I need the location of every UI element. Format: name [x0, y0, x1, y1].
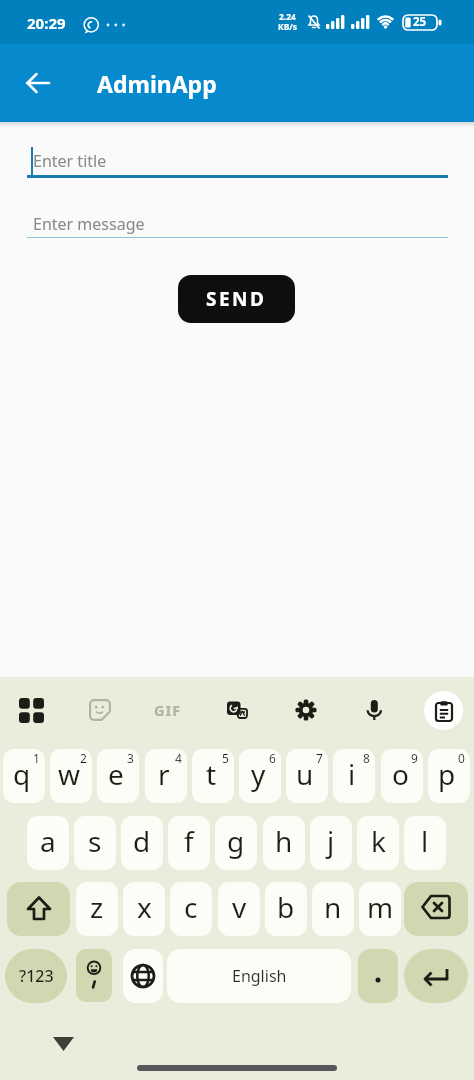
- staticText: t: [206, 755, 217, 793]
- button[interactable]: [358, 949, 398, 1003]
- button[interactable]: s: [74, 816, 116, 870]
- staticText: AdminApp: [97, 68, 217, 99]
- staticText: English: [232, 965, 287, 987]
- button[interactable]: [286, 690, 326, 730]
- button[interactable]: Enter title: [27, 138, 448, 178]
- staticText: a: [40, 822, 56, 860]
- button[interactable]: y: [239, 749, 281, 803]
- button[interactable]: c: [170, 882, 212, 936]
- staticText: 20:29: [27, 13, 66, 33]
- staticText: z: [90, 888, 104, 926]
- staticText: d: [133, 822, 151, 860]
- button[interactable]: x: [123, 882, 165, 936]
- staticText: 6: [269, 750, 276, 766]
- button[interactable]: d: [121, 816, 163, 870]
- button[interactable]: [404, 949, 468, 1003]
- staticText: 1: [33, 750, 40, 766]
- button[interactable]: a: [27, 816, 69, 870]
- button[interactable]: w: [50, 749, 92, 803]
- staticText: e: [108, 755, 124, 793]
- button[interactable]: m: [359, 882, 401, 936]
- button[interactable]: f: [168, 816, 210, 870]
- button[interactable]: v: [218, 882, 260, 936]
- button[interactable]: b: [265, 882, 307, 936]
- staticText: SEND: [206, 286, 267, 312]
- staticText: Enter message: [33, 213, 145, 235]
- button[interactable]: t: [192, 749, 234, 803]
- staticText: g: [227, 822, 245, 860]
- staticText: r: [158, 755, 170, 793]
- staticText: 4: [175, 750, 182, 766]
- staticText: h: [275, 822, 293, 860]
- button[interactable]: Enter message: [27, 205, 448, 239]
- staticText: GIF: [154, 700, 182, 720]
- staticText: b: [277, 888, 295, 926]
- staticText: p: [438, 755, 456, 793]
- button[interactable]: n: [312, 882, 354, 936]
- staticText: u: [296, 755, 314, 793]
- button[interactable]: [217, 690, 257, 730]
- button[interactable]: [404, 882, 468, 936]
- staticText: s: [88, 822, 102, 860]
- button[interactable]: GIF: [148, 690, 188, 730]
- staticText: 0: [458, 750, 465, 766]
- button[interactable]: u: [286, 749, 328, 803]
- staticText: 8: [363, 750, 370, 766]
- button[interactable]: r: [145, 749, 187, 803]
- staticText: 25: [413, 14, 427, 30]
- button[interactable]: [76, 949, 112, 1002]
- button[interactable]: j: [310, 816, 352, 870]
- button[interactable]: k: [357, 816, 399, 870]
- button[interactable]: o: [381, 749, 423, 803]
- staticText: f: [184, 822, 194, 860]
- staticText: n: [324, 888, 342, 926]
- button[interactable]: [11, 690, 51, 730]
- button[interactable]: l: [404, 816, 446, 870]
- staticText: KB/s: [278, 21, 298, 33]
- button[interactable]: [53, 1037, 74, 1052]
- staticText: c: [184, 888, 198, 926]
- button[interactable]: SEND: [178, 275, 295, 323]
- staticText: y: [251, 755, 266, 793]
- staticText: ?123: [19, 965, 54, 987]
- staticText: m: [367, 888, 394, 926]
- button[interactable]: [80, 690, 120, 730]
- staticText: 7: [316, 750, 323, 766]
- button[interactable]: ?123: [5, 949, 67, 1003]
- staticText: 5: [222, 750, 229, 766]
- staticText: 2.24: [279, 11, 296, 23]
- staticText: k: [371, 822, 386, 860]
- staticText: x: [137, 888, 152, 926]
- button[interactable]: i: [333, 749, 375, 803]
- button[interactable]: [424, 691, 463, 730]
- button[interactable]: English: [167, 949, 351, 1003]
- button[interactable]: g: [215, 816, 257, 870]
- button[interactable]: [354, 690, 394, 730]
- staticText: i: [348, 755, 356, 793]
- staticText: v: [232, 888, 247, 926]
- button[interactable]: z: [76, 882, 118, 936]
- staticText: q: [13, 755, 31, 793]
- staticText: 2: [80, 750, 87, 766]
- staticText: 9: [411, 750, 418, 766]
- staticText: j: [327, 822, 335, 860]
- button[interactable]: [7, 882, 70, 936]
- button[interactable]: h: [263, 816, 305, 870]
- button[interactable]: [123, 949, 163, 1003]
- button[interactable]: q: [3, 749, 45, 803]
- staticText: Enter title: [33, 150, 107, 172]
- staticText: w: [58, 755, 81, 793]
- button[interactable]: [14, 59, 62, 107]
- staticText: 3: [127, 750, 134, 766]
- button[interactable]: e: [97, 749, 139, 803]
- staticText: l: [421, 822, 429, 860]
- staticText: o: [392, 755, 409, 793]
- button[interactable]: p: [428, 749, 470, 803]
